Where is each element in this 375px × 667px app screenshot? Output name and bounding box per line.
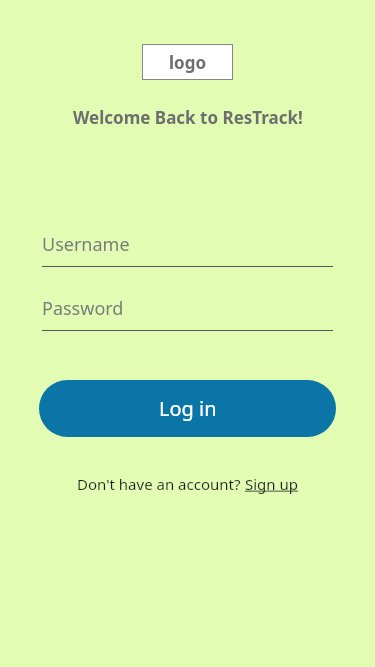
staticText: Welcome Back to ResTrack! [73, 106, 303, 129]
staticText: Password [42, 296, 124, 321]
staticText: logo [169, 51, 207, 74]
button[interactable]: Username [42, 232, 333, 267]
button[interactable]: Sign up [245, 474, 298, 494]
button[interactable]: Log in [39, 380, 336, 437]
staticText: Don't have an account? [77, 474, 245, 494]
staticText: Sign up [245, 474, 298, 494]
button[interactable]: Password [42, 296, 333, 331]
button[interactable]: Logo [142, 44, 233, 80]
staticText: Log in [159, 395, 217, 422]
staticText: Username [42, 232, 130, 257]
